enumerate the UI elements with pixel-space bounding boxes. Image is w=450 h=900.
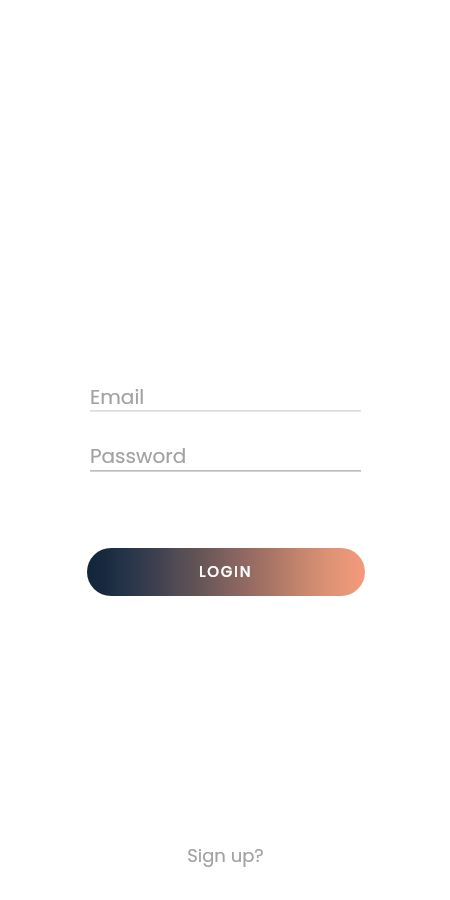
button[interactable]: Sign up? xyxy=(173,838,278,873)
button[interactable]: Email xyxy=(90,383,361,417)
button[interactable]: Password xyxy=(90,442,361,476)
staticText: Password xyxy=(90,442,187,470)
staticText: Email xyxy=(90,383,145,411)
button[interactable]: LOGIN xyxy=(87,548,365,596)
staticText: Sign up? xyxy=(187,843,264,868)
staticText: LOGIN xyxy=(199,561,253,582)
